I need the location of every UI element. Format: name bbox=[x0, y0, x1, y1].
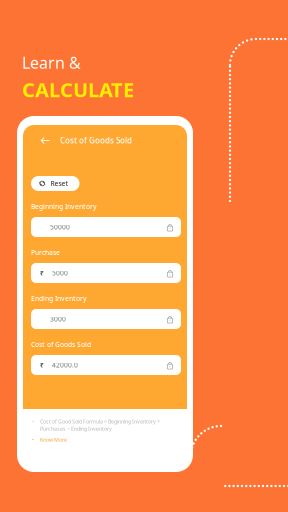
staticText: 42000.0 bbox=[52, 361, 78, 369]
staticText: 5000 bbox=[52, 269, 68, 277]
staticText: Reset bbox=[50, 179, 68, 188]
button[interactable]: Reset bbox=[31, 176, 79, 191]
button[interactable]: ₹ bbox=[31, 355, 181, 375]
staticText: Purchase bbox=[31, 248, 60, 257]
staticText: Learn & bbox=[22, 52, 81, 73]
staticText: CALCULATE bbox=[22, 76, 134, 103]
button[interactable]: Back bbox=[30, 129, 60, 151]
staticText: • bbox=[32, 418, 34, 425]
staticText: Know More bbox=[40, 436, 67, 443]
staticText: Ending Inventory bbox=[31, 294, 87, 303]
button[interactable]: ₹ bbox=[31, 263, 181, 283]
button[interactable]: 50000 bbox=[31, 217, 181, 237]
staticText: ₹ bbox=[40, 269, 44, 277]
staticText: Cost of Good Sold Formula = Beginning In… bbox=[40, 418, 160, 432]
staticText: ₹ bbox=[40, 361, 44, 369]
button[interactable]: • bbox=[32, 436, 67, 443]
staticText: • bbox=[32, 436, 34, 443]
staticText: Cost of Goods Sold bbox=[31, 340, 91, 349]
staticText: 50000 bbox=[50, 223, 70, 231]
button[interactable]: 3000 bbox=[31, 309, 181, 329]
staticText: 3000 bbox=[50, 315, 66, 323]
staticText: Beginning Inventory bbox=[31, 202, 97, 211]
staticText: Cost of Goods Sold bbox=[60, 135, 132, 146]
